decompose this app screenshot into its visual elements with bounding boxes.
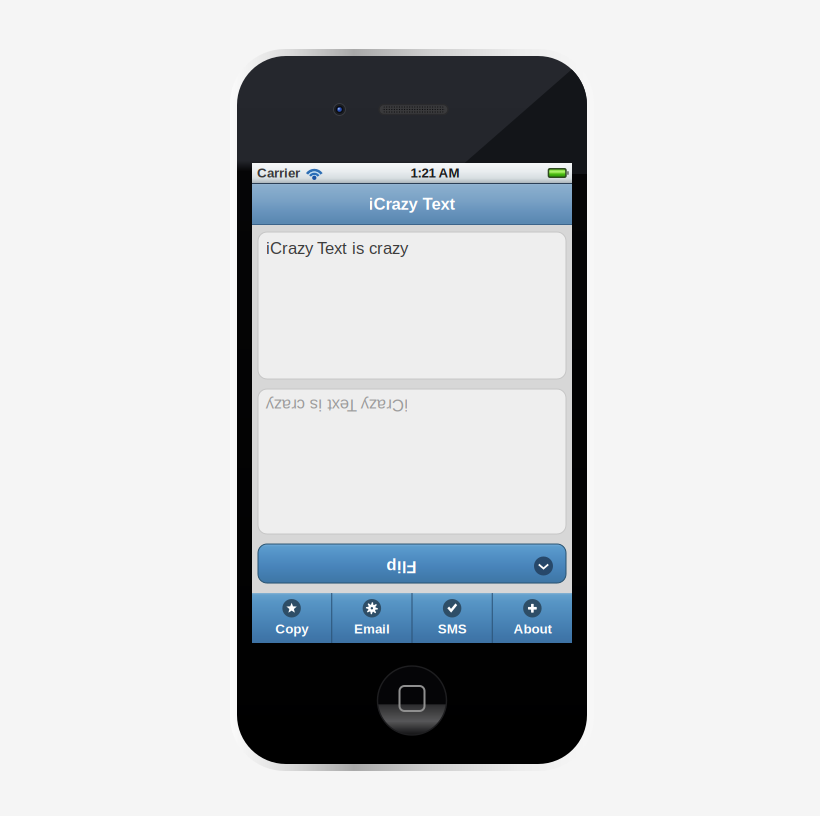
staticText: iCrazy Text is crazy [266,239,408,258]
staticText: Email [354,621,390,636]
staticText: Flip [386,558,416,576]
staticText: SMS [438,621,467,636]
staticText: iCrazy Text is crazy [266,396,408,415]
staticText: iCrazy Text [368,195,455,213]
button[interactable]: Copy [252,593,331,643]
button[interactable]: SMS [412,593,492,643]
button[interactable]: About [493,593,572,643]
staticText: Copy [275,621,308,636]
staticText: Carrier [257,166,300,180]
button[interactable]: Email [332,593,411,643]
staticText: 1:21 AM [410,166,459,180]
staticText: About [513,621,551,636]
button[interactable]: Flip [258,544,566,583]
